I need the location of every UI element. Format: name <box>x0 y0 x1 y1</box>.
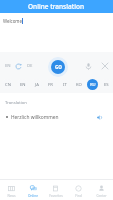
button[interactable]: EN <box>2 58 13 74</box>
button[interactable]: Favorites <box>44 180 67 200</box>
staticText: Online translation <box>28 2 85 11</box>
button[interactable]: Find <box>67 180 90 200</box>
button[interactable]: Online <box>22 180 44 200</box>
staticText: News <box>7 194 16 198</box>
staticText: Herzlich willkommen <box>11 114 59 121</box>
staticText: IT <box>63 82 67 88</box>
button[interactable]: News <box>0 180 22 200</box>
button[interactable]: Voice input <box>83 58 94 74</box>
staticText: Center <box>96 194 107 198</box>
button[interactable]: JA <box>31 79 42 90</box>
button[interactable]: CN <box>2 79 13 90</box>
button[interactable]: EN <box>17 79 28 90</box>
other: Play pronunciation <box>94 112 104 122</box>
staticText: RU <box>90 82 96 88</box>
staticText: Find <box>75 194 82 198</box>
staticText: EN <box>5 63 11 69</box>
button[interactable]: Herzlich willkommen <box>0 111 113 123</box>
button[interactable]: RU <box>87 79 98 90</box>
button[interactable]: IT <box>59 79 70 90</box>
button[interactable]: KO <box>73 79 84 90</box>
button[interactable]: GO <box>51 60 65 74</box>
staticText: KO <box>76 82 82 88</box>
staticText: CN <box>5 82 11 88</box>
button[interactable]: Swap languages <box>13 58 24 74</box>
staticText: Translation <box>5 100 27 106</box>
staticText: GO <box>55 64 62 70</box>
button[interactable]: Center <box>90 180 113 200</box>
button[interactable]: DE <box>24 58 35 74</box>
staticText: Welcome <box>3 18 22 24</box>
button[interactable]: ES <box>101 79 112 90</box>
staticText: Favorites <box>49 194 63 198</box>
staticText: FR <box>48 82 53 88</box>
staticText: ES <box>104 82 109 88</box>
staticText: Online <box>28 194 38 198</box>
staticText: JA <box>35 82 39 88</box>
staticText: EN <box>20 82 26 88</box>
button[interactable]: FR <box>45 79 56 90</box>
staticText: DE <box>27 63 33 69</box>
button[interactable]: Clear text <box>99 58 110 74</box>
